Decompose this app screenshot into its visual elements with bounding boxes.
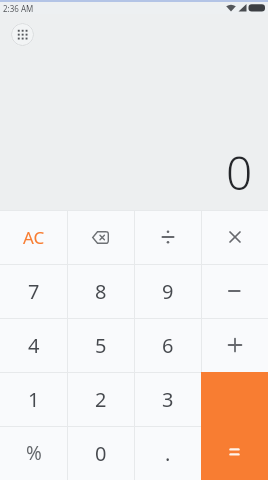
button[interactable]: 3 [134,372,201,426]
staticText: . [165,440,171,467]
button[interactable]: 8 [67,264,134,318]
staticText: 4 [28,332,40,359]
button[interactable]: 9 [134,264,201,318]
button[interactable]: 2 [67,372,134,426]
staticText: 1 [28,386,40,413]
button[interactable]: 1 [0,372,67,426]
staticText: 3 [162,386,174,413]
staticText: % [26,440,42,466]
button[interactable]: 5 [67,318,134,372]
button[interactable]: AC [0,210,67,264]
staticText: 2 [95,386,107,413]
staticText: 0 [95,440,107,467]
button[interactable]: . [134,426,201,480]
staticText: 7 [28,278,40,305]
staticText: AC [23,226,45,249]
button[interactable] [67,210,134,264]
staticText: 0 [226,141,253,204]
button[interactable]: 7 [0,264,67,318]
staticText: 5 [95,332,107,359]
button[interactable]: 0 [67,426,134,480]
button[interactable] [201,210,268,264]
button[interactable] [134,210,201,264]
staticText: 9 [162,278,174,305]
staticText: 8 [95,278,107,305]
button[interactable]: % [0,426,67,480]
staticText: 2:36 AM [3,3,34,14]
button[interactable]: 4 [0,318,67,372]
button[interactable] [11,23,34,46]
button[interactable] [201,318,268,372]
staticText: 6 [162,332,174,359]
button[interactable]: 6 [134,318,201,372]
button[interactable] [201,264,268,318]
button[interactable] [201,372,268,480]
